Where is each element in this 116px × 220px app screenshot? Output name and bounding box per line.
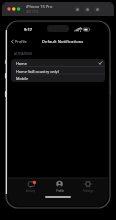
staticText: Profile (15, 39, 27, 44)
staticText: Activity (26, 189, 36, 193)
staticText: iOS 17.0 (26, 10, 39, 14)
button[interactable] (77, 180, 98, 193)
button[interactable] (94, 6, 100, 12)
button[interactable]: Mobile (11, 74, 105, 82)
staticText: 9:17 (24, 27, 32, 32)
staticText: Default Notifications (42, 39, 84, 45)
staticText: iPhone 15 Pro (26, 4, 53, 9)
staticText: Profile (56, 189, 65, 193)
button[interactable] (21, 180, 42, 193)
button[interactable] (49, 180, 70, 193)
button[interactable] (84, 6, 90, 12)
staticText: Settings (83, 189, 94, 193)
button[interactable] (74, 6, 80, 12)
button[interactable]: Profile (10, 37, 32, 46)
button[interactable]: Home (toll country only) (11, 67, 105, 75)
staticText: ACTIVATIONS (14, 52, 33, 56)
staticText: Mobile (16, 76, 29, 81)
staticText: Home (toll country only) (16, 69, 59, 74)
button[interactable]: Home (11, 59, 105, 67)
staticText: Home (16, 61, 27, 66)
